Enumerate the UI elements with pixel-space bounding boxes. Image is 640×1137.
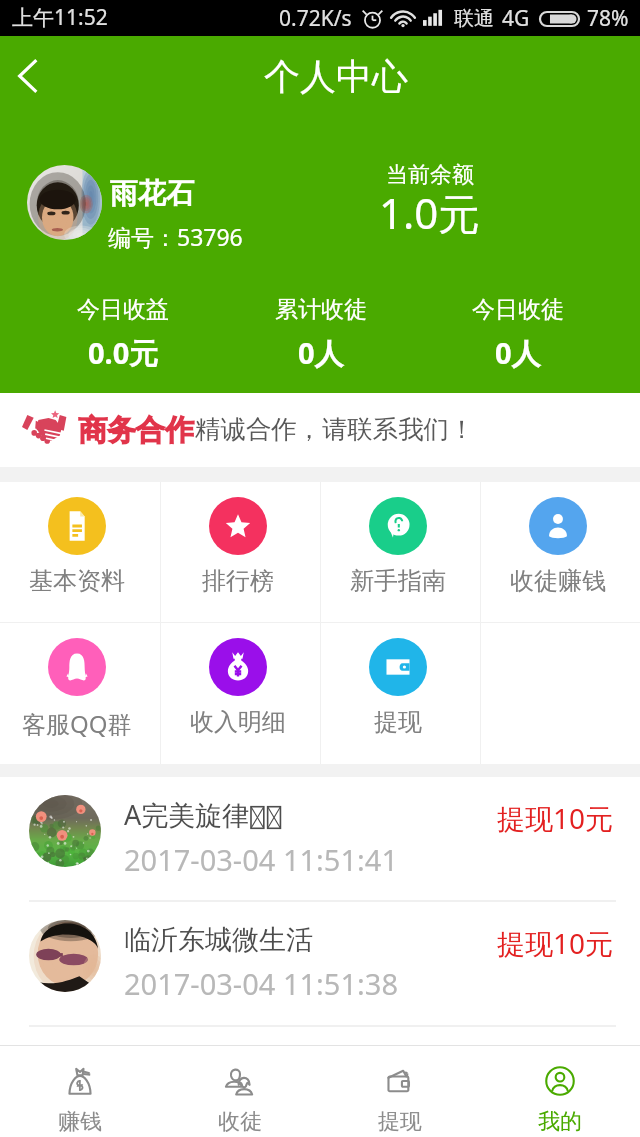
staticText: 提现 [374,707,422,737]
staticText: 收徒 [218,1108,262,1136]
staticText: 上午11:52 [12,3,108,32]
staticText: 商务合作 [78,412,194,449]
staticText: 新手指南 [350,566,446,596]
button[interactable]: 收徒 [160,1046,320,1137]
button[interactable]: 新手指南 [321,482,480,622]
staticText: 78% [587,4,629,33]
staticText: 1.0元 [379,184,481,241]
staticText: 提现10元 [497,799,614,837]
staticText: 今日收徒 [472,295,564,324]
button[interactable]: 基本资料 [0,482,160,622]
staticText: 客服QQ群 [22,707,132,740]
staticText: 雨花石 [110,176,194,211]
staticText: 联通 [454,6,494,31]
button[interactable]: 今日收徒 [419,288,616,393]
button[interactable]: 客服QQ群 [0,623,160,764]
staticText: 收入明细 [190,707,286,737]
button[interactable]: Back [0,36,56,116]
button[interactable]: 赚钱 [0,1046,160,1137]
staticText: 排行榜 [202,566,274,596]
button[interactable]: 收徒赚钱 [481,482,640,622]
staticText: 临沂东城微生活 [124,923,313,957]
staticText: 赚钱 [58,1108,102,1136]
staticText: 编号：53796 [108,221,243,252]
button[interactable]: 提现 [321,623,480,764]
staticText: 0人 [495,333,541,373]
button[interactable]: 今日收益 [24,288,222,393]
staticText: 2017-03-04 11:51:38 [124,964,398,1003]
staticText: 0.0元 [88,333,159,373]
button[interactable]: 临沂东城微生活 [0,902,640,1025]
staticText: 我的 [538,1108,582,1136]
staticText: 0.72K/s [279,4,352,33]
staticText: 收徒赚钱 [510,566,606,596]
staticText: 累计收徒 [275,295,367,324]
button[interactable]: 排行榜 [161,482,320,622]
staticText: 提现10元 [497,924,614,962]
button[interactable]: 商务合作 [0,393,640,467]
staticText: 提现 [378,1108,422,1136]
staticText: 0人 [298,333,344,373]
staticText: A完美旋律 [124,796,250,833]
staticText: 个人中心 [264,54,408,99]
staticText: 当前余额 [386,161,474,189]
button[interactable]: A完美旋律 [0,777,640,900]
button[interactable]: 我的 [480,1046,640,1137]
staticText: 精诚合作，请联系我们！ [195,414,475,446]
button[interactable]: 收入明细 [161,623,320,764]
staticText: 今日收益 [77,295,169,324]
staticText: 2017-03-04 11:51:41 [124,840,398,879]
staticText: 基本资料 [29,566,125,596]
button[interactable]: 提现 [320,1046,480,1137]
staticText: 4G [502,4,530,33]
button[interactable]: 累计收徒 [222,288,419,393]
